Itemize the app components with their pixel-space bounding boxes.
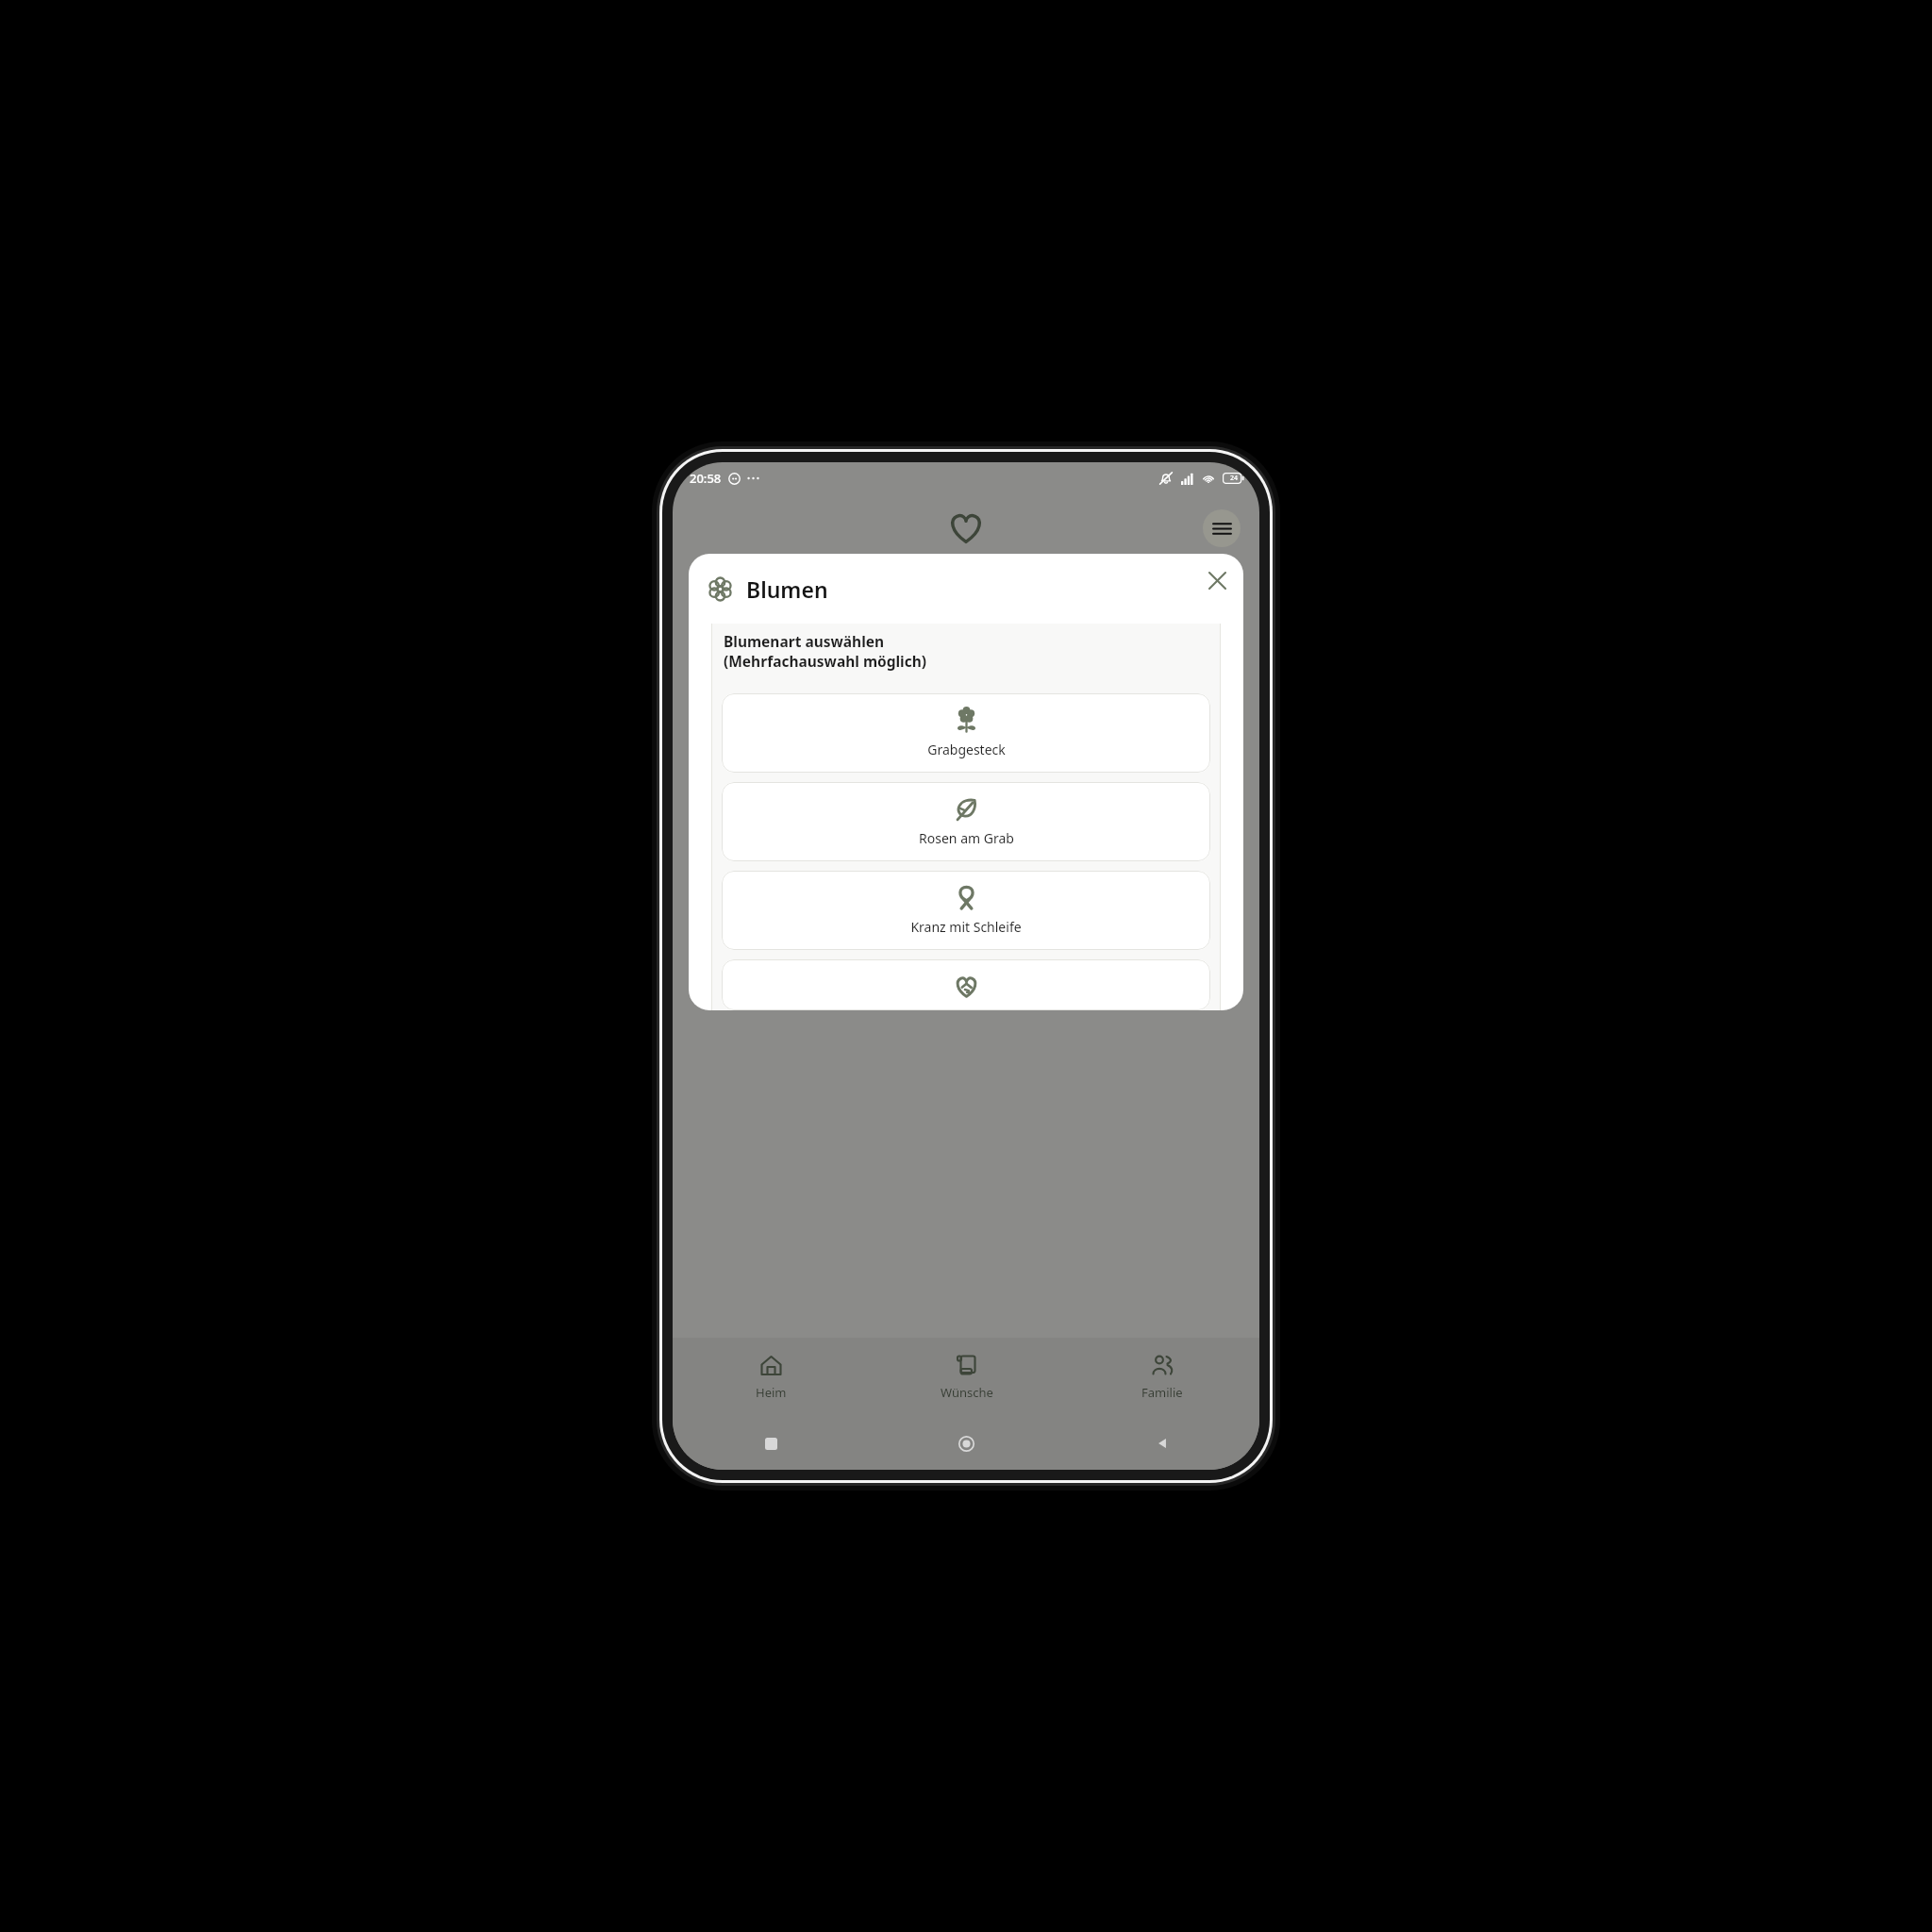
- button[interactable]: Menü: [1203, 509, 1241, 547]
- staticText: Kranz mit Schleife: [910, 918, 1022, 936]
- staticText: Wünsche: [941, 1384, 993, 1401]
- button[interactable]: Wünsche: [869, 1338, 1064, 1417]
- staticText: Familie: [1141, 1384, 1183, 1401]
- button[interactable]: Favoriten: [947, 509, 985, 547]
- staticText: 20:58: [690, 470, 722, 487]
- staticText: Heim: [756, 1384, 787, 1401]
- staticText: Grabgesteck: [927, 741, 1006, 758]
- button[interactable]: Zurück: [1064, 1417, 1259, 1470]
- staticText: Rosen am Grab: [919, 829, 1014, 847]
- button[interactable]: Schließen: [1200, 563, 1234, 597]
- staticText: Blumenart auswählen: [724, 631, 885, 651]
- button[interactable]: Heim: [673, 1338, 869, 1417]
- button[interactable]: Grabgesteck: [722, 693, 1210, 773]
- button[interactable]: Kranz mit Schleife: [722, 871, 1210, 950]
- button[interactable]: Startbildschirm: [869, 1417, 1064, 1470]
- button[interactable]: Übersicht: [673, 1417, 869, 1470]
- staticText: 24: [1230, 474, 1239, 483]
- staticText: (Mehrfachauswahl möglich): [724, 651, 927, 671]
- button[interactable]: Familie: [1064, 1338, 1259, 1417]
- button[interactable]: Rosen am Grab: [722, 782, 1210, 861]
- button[interactable]: Herzgesteck: [722, 959, 1210, 1010]
- staticText: Blumen: [746, 575, 828, 604]
